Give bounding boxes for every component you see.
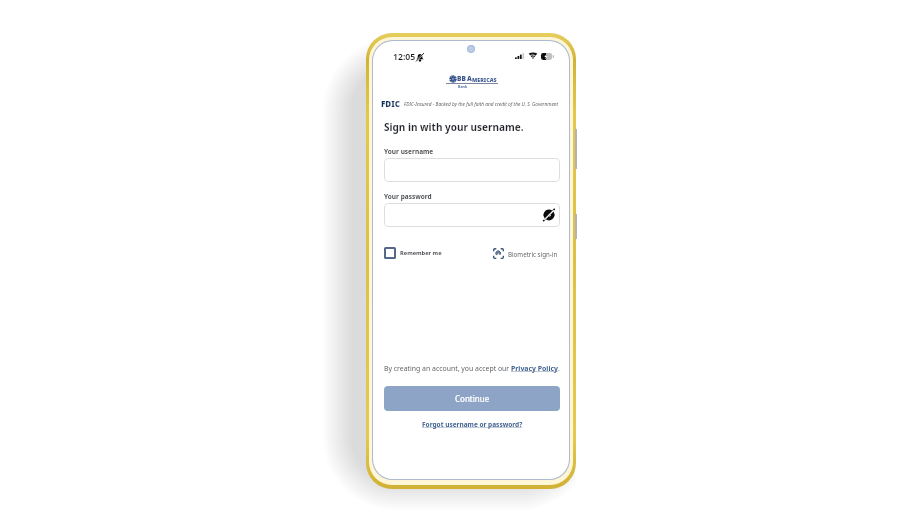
staticText: Your username <box>384 147 434 156</box>
staticText: By creating an account, you accept our <box>384 364 511 373</box>
button[interactable]: Privacy Policy <box>511 364 558 373</box>
button[interactable]: Password field <box>384 203 560 227</box>
staticText: Remember me <box>400 249 442 257</box>
button[interactable]: Remember me <box>384 247 442 259</box>
button[interactable]: Forgot username or password? <box>422 420 523 429</box>
staticText: . <box>558 364 560 373</box>
staticText: Continue <box>455 393 490 404</box>
staticText: FDIC <box>381 98 400 109</box>
staticText: Sign in with your username. <box>384 120 524 134</box>
button[interactable]: Show password <box>543 209 555 221</box>
staticText: Biometric sign-in <box>508 250 558 258</box>
staticText: MERICAS <box>472 76 497 83</box>
button[interactable]: Continue <box>384 386 560 411</box>
button[interactable]: Username field <box>384 158 560 182</box>
staticText: A <box>467 74 472 83</box>
staticText: Your password <box>384 192 432 201</box>
staticText: 12:05 <box>393 51 416 63</box>
staticText: FDIC-Insured - Backed by the full faith … <box>404 101 559 108</box>
staticText: Bank <box>458 84 468 89</box>
button[interactable]: Biometric sign-in <box>493 248 558 259</box>
staticText: BB <box>457 74 466 83</box>
